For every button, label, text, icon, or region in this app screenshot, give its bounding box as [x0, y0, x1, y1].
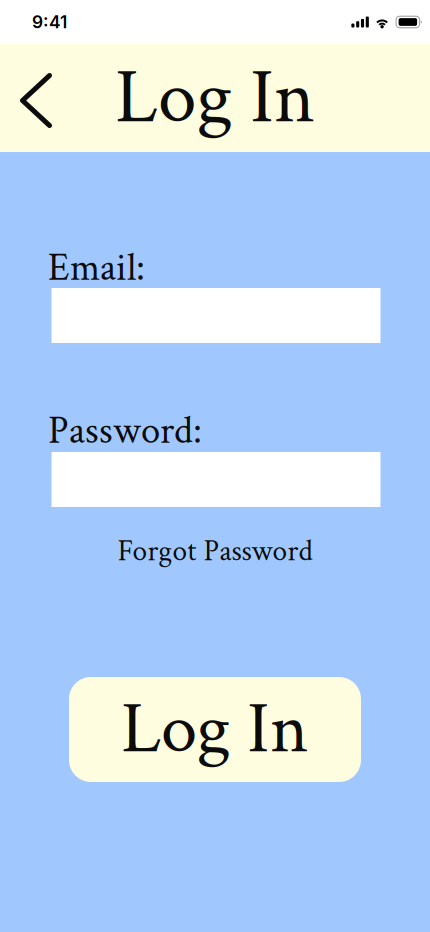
staticText: Forgot Password	[117, 532, 312, 570]
button[interactable]: Forgot Password	[48, 533, 382, 570]
staticText: Log In	[115, 48, 315, 148]
staticText: Password:	[48, 406, 202, 456]
staticText: Log In	[121, 682, 309, 777]
button[interactable]: Log In	[69, 677, 361, 782]
staticText: 9:41	[32, 11, 67, 32]
staticText: Email:	[48, 243, 145, 293]
button[interactable]: Back	[0, 44, 72, 152]
